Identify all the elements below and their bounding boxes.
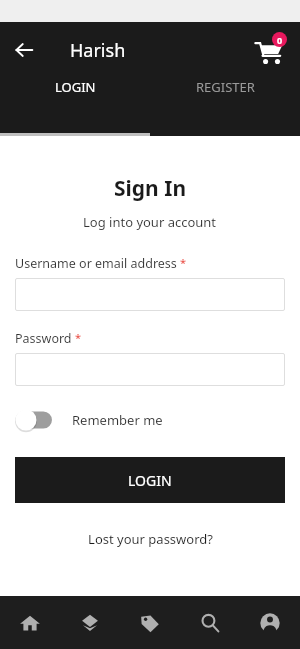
button[interactable]: LOGIN — [0, 78, 150, 96]
staticText: LOGIN — [55, 78, 96, 96]
staticText: Password — [15, 330, 72, 347]
staticText: 0 — [277, 34, 283, 46]
staticText: Username or email address — [15, 255, 177, 272]
button[interactable]: Back — [0, 26, 48, 74]
button[interactable]: Offers — [120, 596, 180, 649]
button[interactable] — [15, 278, 285, 311]
button[interactable]: Home — [0, 596, 60, 649]
button[interactable]: REGISTER — [150, 78, 300, 96]
staticText: Harish — [70, 38, 126, 63]
staticText: * — [180, 255, 187, 270]
staticText: LOGIN — [128, 471, 172, 490]
staticText: Lost your password? — [88, 530, 213, 548]
button[interactable] — [15, 353, 285, 386]
button[interactable]: Search — [180, 596, 240, 649]
staticText: Sign In — [114, 174, 187, 203]
staticText: * — [75, 330, 82, 345]
button[interactable]: LOGIN — [15, 457, 285, 503]
button[interactable]: Categories — [60, 596, 120, 649]
button[interactable]: Lost your password? — [88, 530, 213, 548]
button[interactable]: Account — [240, 596, 300, 649]
button[interactable]: Cart, 0 items — [244, 24, 296, 76]
staticText: Log into your account — [83, 213, 217, 231]
button[interactable]: Remember me — [15, 409, 300, 431]
staticText: Remember me — [72, 411, 163, 429]
staticText: REGISTER — [196, 78, 255, 96]
